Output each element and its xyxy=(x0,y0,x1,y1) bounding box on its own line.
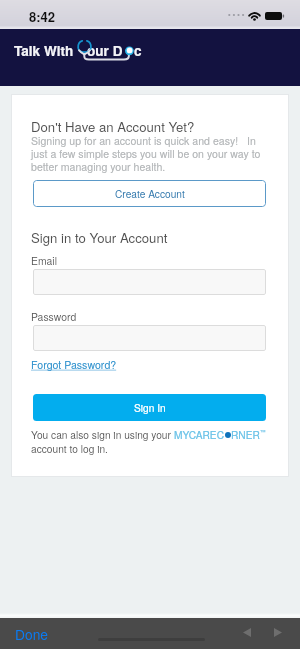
staticText: Create Account xyxy=(115,186,185,201)
staticText: Email xyxy=(31,253,57,268)
button[interactable]: Done xyxy=(9,620,54,648)
staticText: 8:42 xyxy=(29,7,56,26)
staticText: You can also sign in using your xyxy=(31,427,174,442)
button[interactable]: Create Account xyxy=(33,180,266,207)
button[interactable]: Next field xyxy=(267,622,288,643)
staticText: Sign In xyxy=(134,400,166,415)
staticText: Talk With xyxy=(14,41,74,60)
staticText: ™ xyxy=(260,428,266,436)
button[interactable]: Previous field xyxy=(236,622,257,643)
staticText: Don't Have an Account Yet? xyxy=(31,117,195,136)
staticText: c xyxy=(134,41,142,60)
staticText: Forgot Password? xyxy=(31,357,117,372)
button[interactable]: Sign In xyxy=(33,394,266,421)
button[interactable] xyxy=(33,269,266,295)
button[interactable] xyxy=(33,325,266,351)
staticText: our D xyxy=(87,41,123,60)
staticText: Sign in to Your Account xyxy=(31,228,168,247)
staticText: RNER xyxy=(231,427,260,442)
staticText: Password xyxy=(31,309,77,324)
staticText: account to log in. xyxy=(31,441,108,456)
staticText: Done xyxy=(15,624,48,644)
staticText: MYCAREC xyxy=(174,427,225,442)
button[interactable]: Forgot Password? xyxy=(31,357,117,372)
staticText: Signing up for an account is quick and e… xyxy=(31,133,267,174)
